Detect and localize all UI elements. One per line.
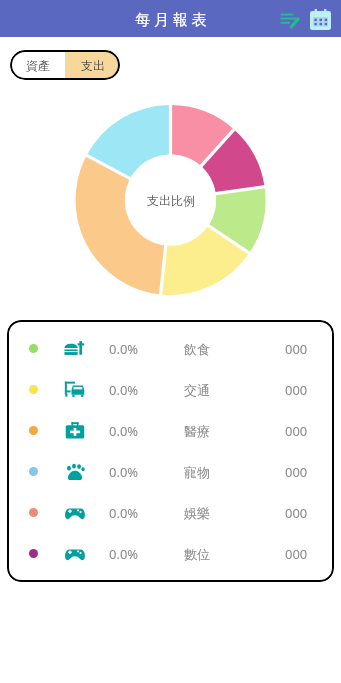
button[interactable]: 0.0% bbox=[7, 492, 334, 533]
staticText: 交通 bbox=[184, 382, 210, 398]
staticText: 000 bbox=[285, 340, 308, 358]
button[interactable]: Edit list bbox=[274, 4, 304, 34]
button[interactable]: 資產 bbox=[10, 50, 65, 80]
staticText: 資產 bbox=[26, 58, 50, 73]
staticText: 0.0% bbox=[109, 504, 139, 522]
staticText: 支出比例 bbox=[147, 193, 195, 208]
button[interactable]: 0.0% bbox=[7, 328, 334, 369]
staticText: 0.0% bbox=[109, 422, 139, 440]
staticText: 數位 bbox=[184, 546, 210, 562]
staticText: 0.0% bbox=[109, 463, 139, 481]
button[interactable]: 0.0% bbox=[7, 410, 334, 451]
staticText: 000 bbox=[285, 463, 308, 481]
staticText: 0.0% bbox=[109, 381, 139, 399]
staticText: 000 bbox=[285, 545, 308, 563]
staticText: 每 月 報 表 bbox=[135, 9, 207, 29]
staticText: 000 bbox=[285, 381, 308, 399]
staticText: 飲食 bbox=[184, 341, 210, 357]
staticText: 寵物 bbox=[184, 464, 210, 480]
button[interactable]: 0.0% bbox=[7, 533, 334, 574]
staticText: 000 bbox=[285, 422, 308, 440]
button[interactable]: 0.0% bbox=[7, 451, 334, 492]
staticText: 支出 bbox=[81, 58, 105, 73]
staticText: 000 bbox=[285, 504, 308, 522]
staticText: 0.0% bbox=[109, 340, 139, 358]
button[interactable]: Calendar bbox=[305, 4, 335, 34]
button[interactable]: 支出 bbox=[65, 50, 120, 80]
staticText: 0.0% bbox=[109, 545, 139, 563]
staticText: 娛樂 bbox=[184, 505, 210, 521]
staticText: 醫療 bbox=[184, 423, 210, 439]
button[interactable]: 0.0% bbox=[7, 369, 334, 410]
